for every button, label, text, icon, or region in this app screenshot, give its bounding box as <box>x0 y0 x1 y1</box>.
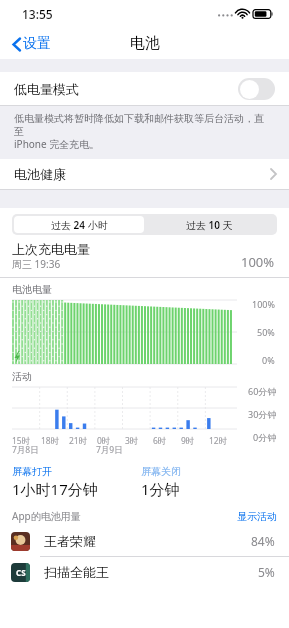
button[interactable]: 显示活动 <box>237 510 277 523</box>
staticText: 1分钟 <box>141 479 180 499</box>
staticText: 设置 <box>23 35 51 53</box>
staticText: 60分钟 <box>248 385 277 397</box>
staticText: 0时 <box>97 435 111 447</box>
button[interactable]: Low Power Mode toggle <box>238 78 275 100</box>
staticText: 屏幕打开 <box>12 465 52 478</box>
button[interactable]: 过去 10 天 <box>144 216 275 233</box>
staticText: 9时 <box>181 435 195 447</box>
staticText: 7月9日 <box>96 444 123 456</box>
staticText: 电池 <box>130 34 160 53</box>
staticText: 100% <box>241 253 275 271</box>
staticText: 12时 <box>209 435 228 447</box>
button[interactable]: 过去 24 小时 <box>14 216 144 233</box>
staticText: 上次充电电量 <box>12 241 90 257</box>
staticText: 15时 <box>12 435 31 447</box>
staticText: 100% <box>252 298 275 310</box>
staticText: 过去 24 小时 <box>51 218 108 232</box>
staticText: 50% <box>257 326 275 338</box>
button[interactable]: 低电量模式 <box>0 72 289 105</box>
button[interactable]: CS <box>0 557 289 587</box>
staticText: 21时 <box>69 435 88 447</box>
button[interactable]: 设置 <box>8 32 55 56</box>
staticText: 扫描全能王 <box>44 564 109 580</box>
staticText: 0分钟 <box>253 431 277 443</box>
staticText: 30分钟 <box>248 408 277 420</box>
staticText: 13:55 <box>22 6 53 22</box>
staticText: 18时 <box>41 435 60 447</box>
staticText: 3时 <box>125 435 139 447</box>
staticText: App的电池用量 <box>12 509 81 523</box>
staticText: 活动 <box>12 370 32 383</box>
staticText: 0% <box>262 354 275 366</box>
staticText: 5% <box>258 564 275 580</box>
staticText: 低电量模式将暂时降低如下载和邮件获取等后台活动，直至 iPhone 完全充电。 <box>14 112 271 151</box>
staticText: 84% <box>251 533 275 549</box>
staticText: 低电量模式 <box>14 81 79 97</box>
staticText: 过去 10 天 <box>186 218 233 232</box>
staticText: 屏幕关闭 <box>141 465 181 478</box>
staticText: 周三 19:36 <box>12 257 61 271</box>
staticText: 6时 <box>153 435 167 447</box>
staticText: 显示活动 <box>237 510 277 523</box>
staticText: CS <box>16 567 26 578</box>
staticText: 电池电量 <box>12 283 52 296</box>
staticText: 电池健康 <box>14 166 66 182</box>
staticText: 王者荣耀 <box>44 533 96 549</box>
button[interactable]: 王者荣耀 <box>0 526 289 556</box>
button[interactable]: 电池健康 <box>0 159 289 189</box>
staticText: 7月8日 <box>12 444 39 456</box>
staticText: 1小时17分钟 <box>12 479 98 499</box>
